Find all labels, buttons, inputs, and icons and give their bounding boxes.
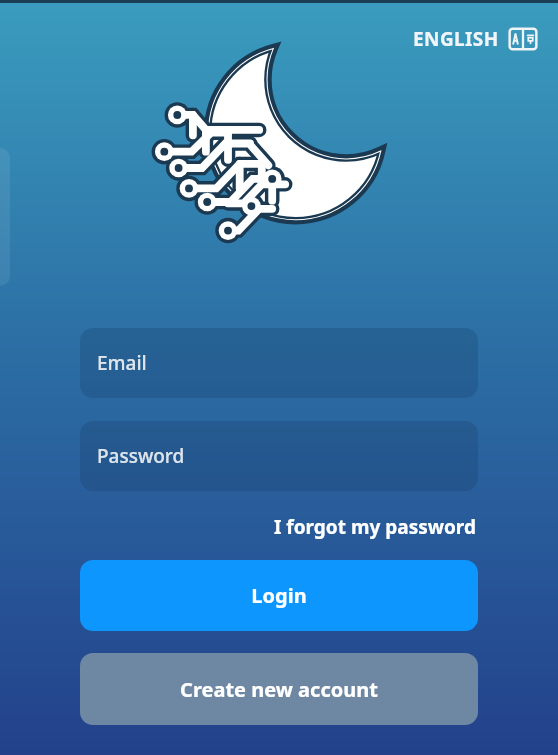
- button[interactable]: Login: [80, 560, 478, 631]
- staticText: Create new account: [180, 676, 378, 703]
- button[interactable]: I forgot my password: [272, 512, 478, 542]
- staticText: Email: [97, 350, 147, 376]
- button[interactable]: Create new account: [80, 653, 478, 725]
- staticText: Login: [251, 582, 307, 609]
- button[interactable]: Email: [80, 328, 478, 398]
- staticText: I forgot my password: [274, 514, 476, 540]
- button[interactable]: Change language: English: [409, 22, 542, 56]
- button[interactable]: Password: [80, 421, 478, 491]
- staticText: ENGLISH: [413, 26, 499, 52]
- staticText: Password: [97, 443, 185, 469]
